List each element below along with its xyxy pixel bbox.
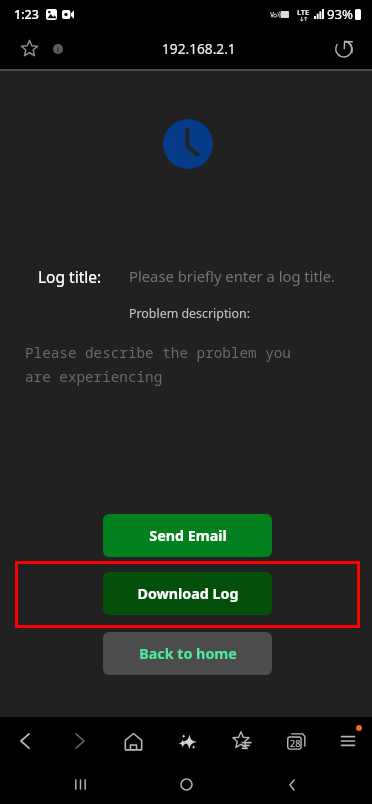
staticText: Log title: [38,266,102,287]
staticText: 93% [327,5,354,23]
button[interactable]: Back to home [103,632,272,675]
button[interactable]: Send Email [103,514,272,557]
button[interactable]: Menu [328,717,368,765]
button[interactable]: Reload [326,28,362,69]
button[interactable]: Home [113,717,153,765]
staticText: Send Email [149,526,227,545]
staticText: Please briefly enter a log title. [129,266,336,286]
button[interactable]: Site information [44,28,72,69]
staticText: Download Log [137,584,239,603]
button[interactable]: Back [272,765,312,804]
staticText: Back to home [139,644,237,663]
staticText: LTE [297,7,310,17]
staticText: 28 [290,737,301,749]
button[interactable]: Back [5,717,45,765]
staticText: 1:23 [14,6,39,23]
staticText: i [57,44,60,54]
staticText: Problem description: [129,305,251,322]
button[interactable]: Recents [60,765,100,804]
button[interactable]: Bookmark [11,28,47,69]
button[interactable]: Assistant [167,717,207,765]
button[interactable]: Tabs, 28 open [276,717,316,765]
button[interactable]: Forward [60,717,100,765]
button[interactable]: Bookmarks [222,717,262,765]
staticText: Please describe the problem you are expe… [25,343,291,386]
staticText: 192.168.2.1 [162,39,236,58]
button[interactable]: Download Log [103,572,272,615]
button[interactable]: Home [166,765,206,804]
